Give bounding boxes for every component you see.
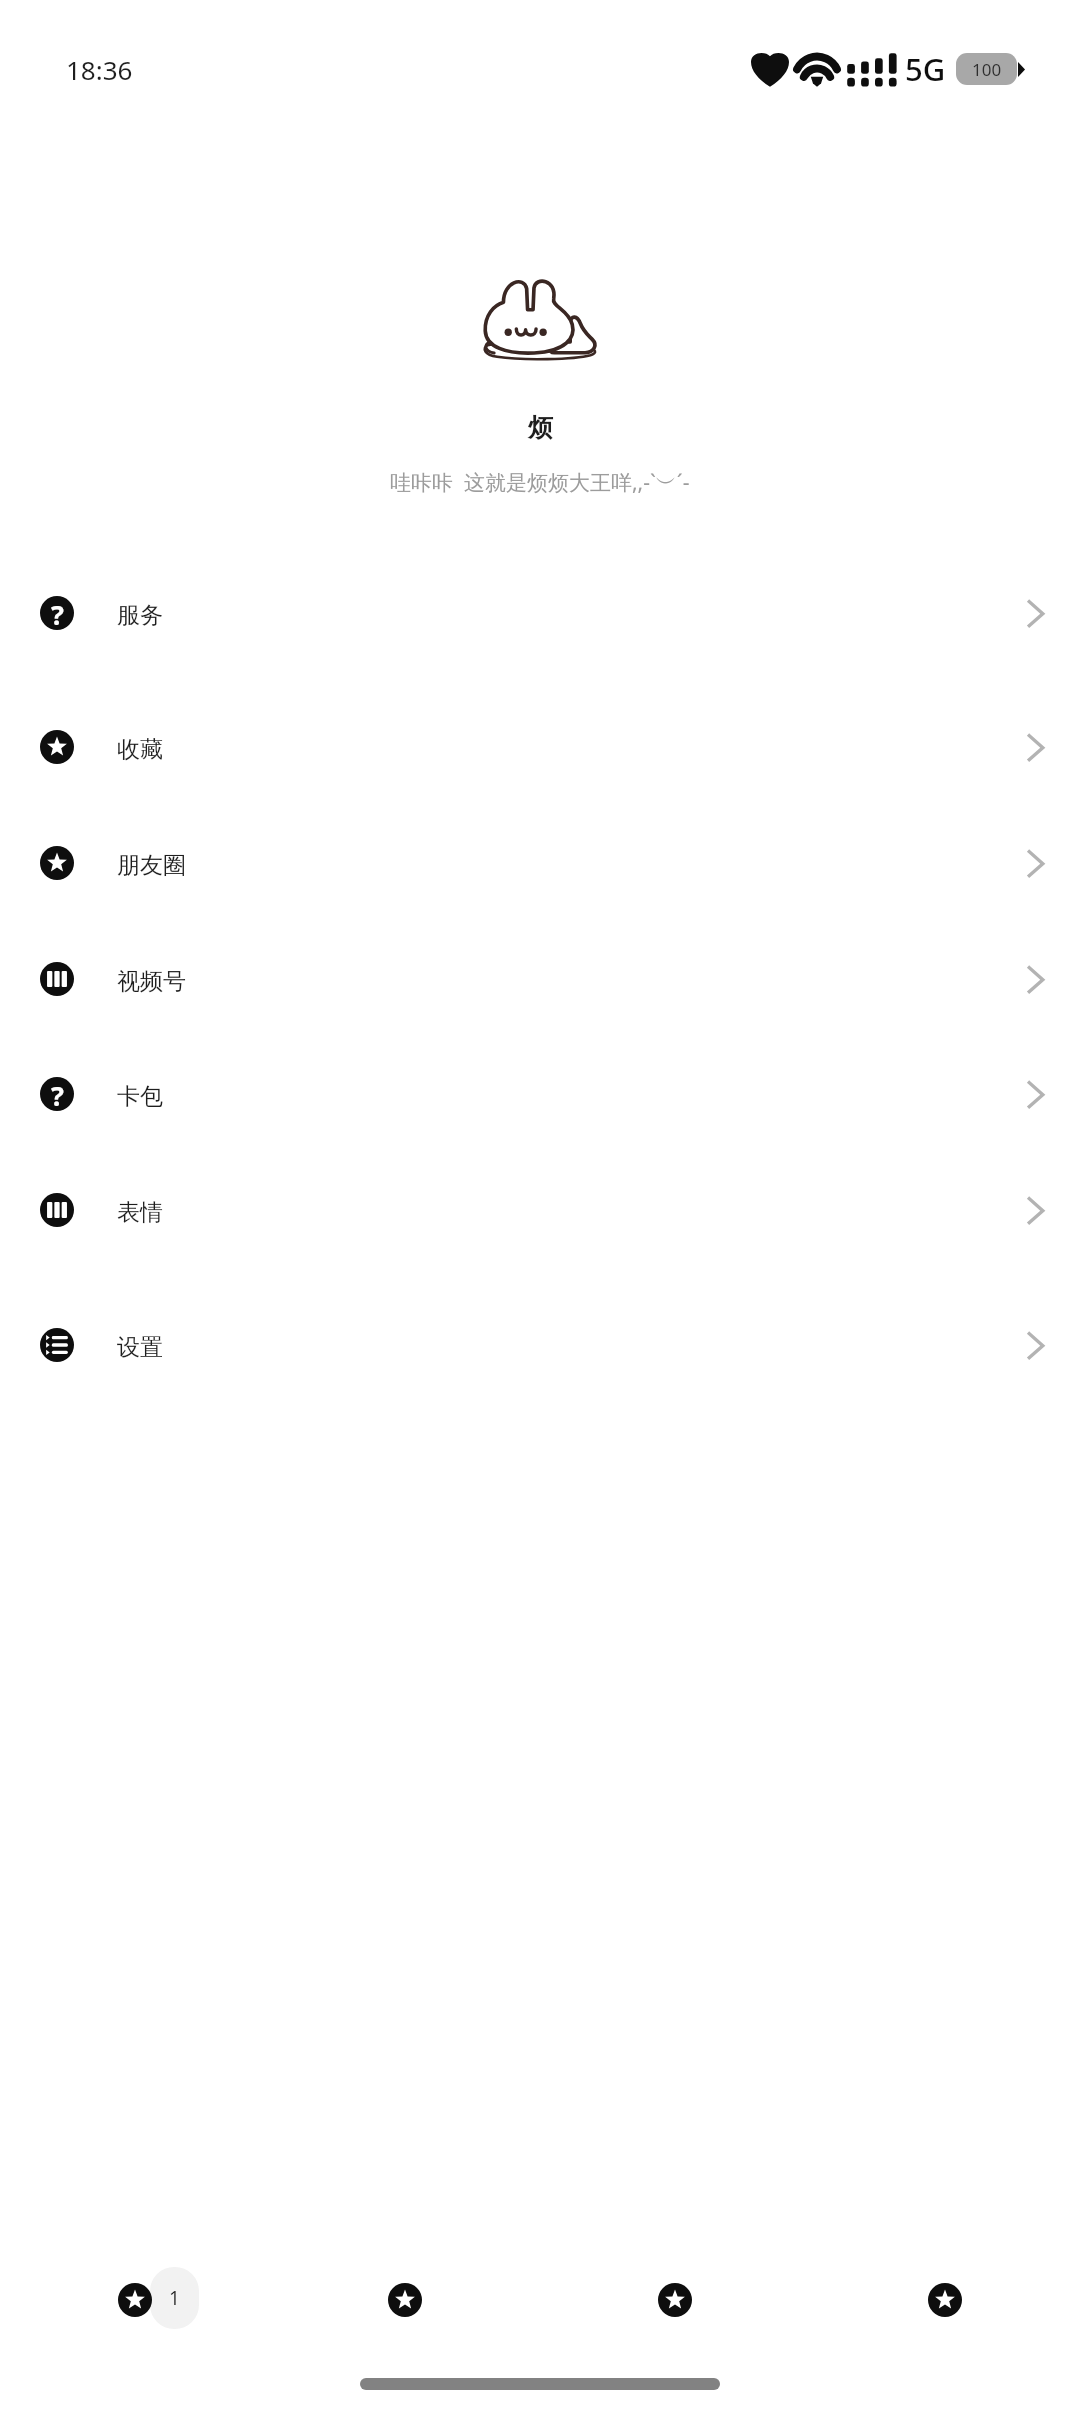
staticText: 100 bbox=[972, 58, 1002, 81]
staticText: 烦 bbox=[528, 412, 553, 443]
button[interactable]: ? bbox=[0, 555, 1080, 671]
staticText: 收藏 bbox=[117, 735, 163, 764]
staticText: ? bbox=[51, 596, 64, 630]
button[interactable]: 收藏 bbox=[0, 689, 1080, 805]
button[interactable]: ? bbox=[0, 1036, 1080, 1152]
staticText: 视频号 bbox=[117, 967, 186, 996]
staticText: 1 bbox=[169, 2285, 180, 2311]
staticText: ? bbox=[51, 1077, 64, 1111]
button[interactable]: Personal information bbox=[0, 150, 1080, 550]
staticText: 卡包 bbox=[117, 1082, 163, 1111]
button[interactable]: 表情 bbox=[0, 1152, 1080, 1268]
staticText: 设置 bbox=[117, 1333, 163, 1362]
staticText: 18:36 bbox=[66, 52, 133, 87]
staticText: 哇咔咔 这就是烦烦大王咩,,-`︶´- bbox=[390, 468, 690, 497]
staticText: 5G bbox=[905, 48, 946, 90]
button[interactable]: 设置 bbox=[0, 1287, 1080, 1403]
button[interactable]: 视频号 bbox=[0, 921, 1080, 1037]
staticText: 朋友圈 bbox=[117, 851, 186, 880]
staticText: 服务 bbox=[117, 601, 163, 630]
button[interactable]: Contacts bbox=[337, 2240, 472, 2360]
button[interactable]: 朋友圈 bbox=[0, 805, 1080, 921]
button[interactable]: Discover bbox=[607, 2240, 742, 2360]
button[interactable]: Chats bbox=[67, 2240, 202, 2360]
button[interactable]: Me bbox=[877, 2240, 1012, 2360]
staticText: 表情 bbox=[117, 1198, 163, 1227]
